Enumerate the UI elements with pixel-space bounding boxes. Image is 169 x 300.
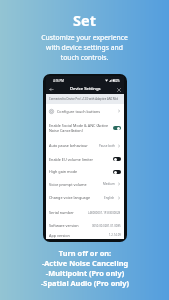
button[interactable]: Toggle off (113, 157, 121, 161)
staticText: English (104, 196, 115, 200)
staticText: L48000001-1P-83000028 (88, 211, 121, 215)
staticText: Serial number (49, 210, 74, 215)
button[interactable]: Configure touch buttons (46, 104, 124, 118)
staticText: 1.2.14.09 (109, 233, 121, 237)
button[interactable]: Enable Social Mode & ANC (Active Noise C… (46, 118, 124, 138)
button[interactable]: Back (46, 85, 56, 94)
staticText: App version (49, 233, 70, 238)
staticText: Connected to Device Pro (+123) with Adap… (49, 97, 118, 101)
staticText: 4:16 PM (53, 79, 64, 83)
staticText: Change voice language (49, 195, 91, 200)
staticText: Auto pause behaviour (49, 143, 88, 148)
button[interactable]: Close (114, 85, 124, 94)
button[interactable]: Toggle off (113, 170, 121, 174)
staticText: Medium (103, 182, 115, 186)
staticText: Voice prompt volume (49, 182, 87, 187)
staticText: High gain mode (49, 169, 111, 174)
staticText: Turn off or on: -Active Noise Canceling … (41, 248, 129, 288)
staticText: 82% (114, 79, 120, 83)
button[interactable]: Enable EU volume limiter (46, 153, 124, 165)
button[interactable]: Voice prompt volume (46, 178, 124, 190)
staticText: Enable EU volume limiter (49, 157, 111, 162)
staticText: Software version (49, 223, 79, 228)
staticText: Device Settings (70, 86, 101, 92)
button[interactable]: Auto pause behaviour (46, 138, 124, 153)
staticText: Enable Social Mode & ANC (Active Noise C… (49, 123, 111, 133)
button[interactable]: High gain mode (46, 165, 124, 178)
staticText: Customize your experience with device se… (41, 33, 128, 62)
staticText: Set (73, 10, 96, 30)
button[interactable]: Change voice language (46, 190, 124, 205)
staticText: Pause both (99, 144, 115, 148)
staticText: Configure touch buttons (57, 109, 101, 114)
staticText: 0050.00.0281.01.0085 (92, 224, 121, 228)
button[interactable]: Toggle on (113, 126, 121, 130)
